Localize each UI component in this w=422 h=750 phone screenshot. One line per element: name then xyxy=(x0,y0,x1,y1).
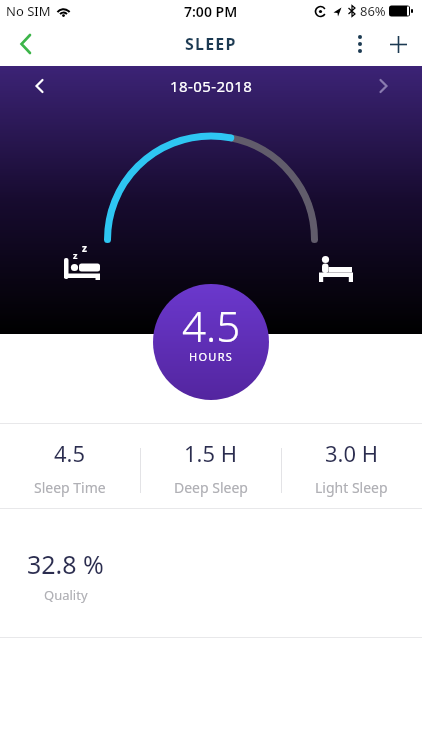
staticText: 18-05-2018 xyxy=(170,76,253,96)
button[interactable] xyxy=(24,71,54,101)
staticText: 86% xyxy=(360,2,386,20)
button[interactable]: 3.0 H xyxy=(281,424,422,508)
staticText: 32.8 % xyxy=(27,547,104,581)
staticText: 1.5 H xyxy=(184,438,238,468)
staticText: Sleep Time xyxy=(34,478,106,497)
staticText: 4.5 xyxy=(54,438,86,468)
button[interactable]: 4.5 xyxy=(0,424,140,508)
staticText: z xyxy=(73,249,78,261)
staticText: z xyxy=(82,241,87,255)
button[interactable]: 32.8 % xyxy=(27,547,104,604)
button[interactable] xyxy=(8,26,44,62)
staticText: Quality xyxy=(44,586,88,604)
staticText: Light Sleep xyxy=(315,478,388,497)
staticText: 3.0 H xyxy=(325,438,379,468)
staticText: HOURS xyxy=(189,349,234,364)
staticText: SLEEP xyxy=(185,33,237,55)
staticText: 7:00 PM xyxy=(184,2,238,21)
button[interactable]: 4.5 xyxy=(153,284,269,400)
button[interactable] xyxy=(382,28,414,60)
staticText: 4.5 xyxy=(182,297,241,354)
button[interactable] xyxy=(346,30,374,58)
button[interactable]: 1.5 H xyxy=(140,424,281,508)
staticText: Deep Sleep xyxy=(174,478,248,497)
staticText: No SIM xyxy=(6,2,51,20)
button[interactable] xyxy=(368,71,398,101)
